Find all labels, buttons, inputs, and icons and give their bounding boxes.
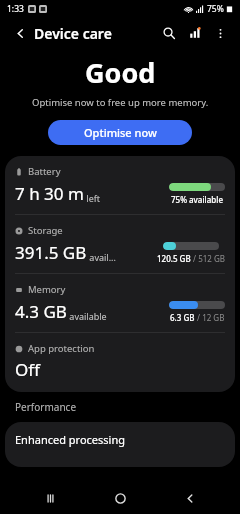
staticText: avail... — [87, 251, 116, 263]
staticText: Memory — [28, 283, 66, 296]
staticText: 4.3 GB — [15, 300, 67, 323]
staticText: / 12 GB — [195, 312, 225, 323]
staticText: Battery — [28, 165, 61, 178]
staticText: Optimise now — [84, 125, 157, 140]
button[interactable]: Enhanced processing — [5, 422, 235, 467]
staticText: 75% available — [171, 194, 224, 205]
staticText: Performance — [15, 400, 77, 414]
staticText: available — [67, 310, 107, 322]
button[interactable]: Recent apps — [30, 482, 70, 514]
button[interactable]: Search — [157, 21, 181, 45]
staticText: / 512 GB — [191, 253, 225, 264]
button[interactable]: Memory — [5, 274, 235, 332]
staticText: 1:33 — [7, 3, 24, 15]
staticText: Optimise now to free up more memory. — [32, 96, 209, 109]
staticText: Device care — [34, 24, 112, 43]
staticText: Storage — [28, 224, 63, 237]
button[interactable]: App protection — [5, 333, 235, 392]
staticText: Good — [85, 54, 156, 91]
staticText: 75% — [207, 3, 224, 15]
staticText: 120.5 GB — [157, 253, 191, 264]
staticText: Off — [15, 358, 40, 381]
staticText: 391.5 GB — [15, 241, 87, 264]
staticText: left — [84, 192, 101, 204]
button[interactable]: Usage statistics — [183, 21, 207, 45]
button[interactable]: Back — [170, 482, 210, 514]
staticText: App protection — [28, 342, 95, 355]
button[interactable]: Back — [9, 22, 31, 44]
button[interactable]: Storage — [5, 215, 235, 273]
button[interactable]: Home — [100, 482, 140, 514]
button[interactable]: Battery — [5, 156, 235, 214]
button[interactable]: Optimise now — [48, 120, 192, 145]
staticText: 6.3 GB — [170, 312, 195, 323]
staticText: 7 h 30 m — [15, 182, 84, 205]
button[interactable]: More options — [209, 22, 231, 44]
staticText: Enhanced processing — [15, 432, 125, 447]
